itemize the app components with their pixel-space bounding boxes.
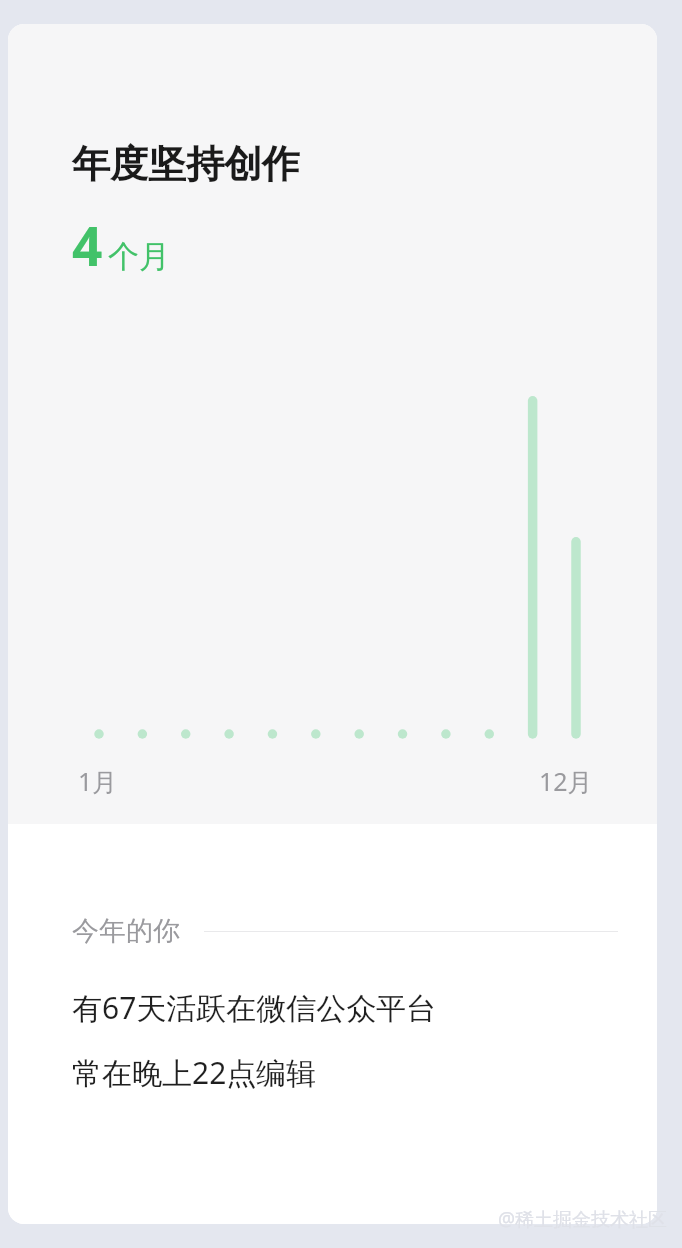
staticText: 个月 bbox=[108, 237, 170, 276]
button[interactable]: 年度坚持创作 bbox=[8, 24, 657, 1224]
staticText: 4 bbox=[72, 209, 103, 281]
staticText: 常在晚上22点编辑 bbox=[72, 1052, 317, 1093]
staticText: 年度坚持创作 bbox=[72, 140, 300, 188]
staticText: @稀土掘金技术社区 bbox=[498, 1206, 668, 1232]
staticText: 有67天活跃在微信公众平台 bbox=[72, 987, 437, 1028]
staticText: 1月 bbox=[78, 764, 118, 798]
staticText: 12月 bbox=[539, 764, 593, 798]
staticText: 今年的你 bbox=[72, 914, 180, 948]
